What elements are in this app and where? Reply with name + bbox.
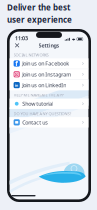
- button[interactable]: Show tutorial: [10, 98, 88, 109]
- button[interactable]: Contact us: [10, 117, 88, 127]
- staticText: DO YOU HAVE ANY QUESTIONS?: [14, 111, 72, 116]
- staticText: Join us on Facebook: [22, 60, 69, 67]
- button[interactable]: Join us on Instagram: [10, 69, 88, 79]
- staticText: 11:03: [15, 35, 28, 42]
- button[interactable]: in: [10, 80, 88, 90]
- staticText: SOCIAL NETWORKS: [14, 52, 49, 57]
- staticText: Settings: [38, 42, 59, 49]
- staticText: Deliver the best: [7, 2, 70, 13]
- staticText: f: [15, 59, 18, 68]
- staticText: Contact us: [22, 119, 48, 126]
- staticText: user experience: [7, 14, 72, 25]
- button[interactable]: f: [10, 58, 88, 69]
- staticText: Join us on LinkedIn: [22, 82, 66, 89]
- staticText: Join us on Instagram: [22, 71, 71, 78]
- staticText: Show tutorial: [22, 100, 53, 107]
- button[interactable]: Close: [12, 40, 23, 51]
- staticText: in: [15, 82, 19, 88]
- staticText: HELP ME NAVIGATE THE APP: [14, 92, 64, 98]
